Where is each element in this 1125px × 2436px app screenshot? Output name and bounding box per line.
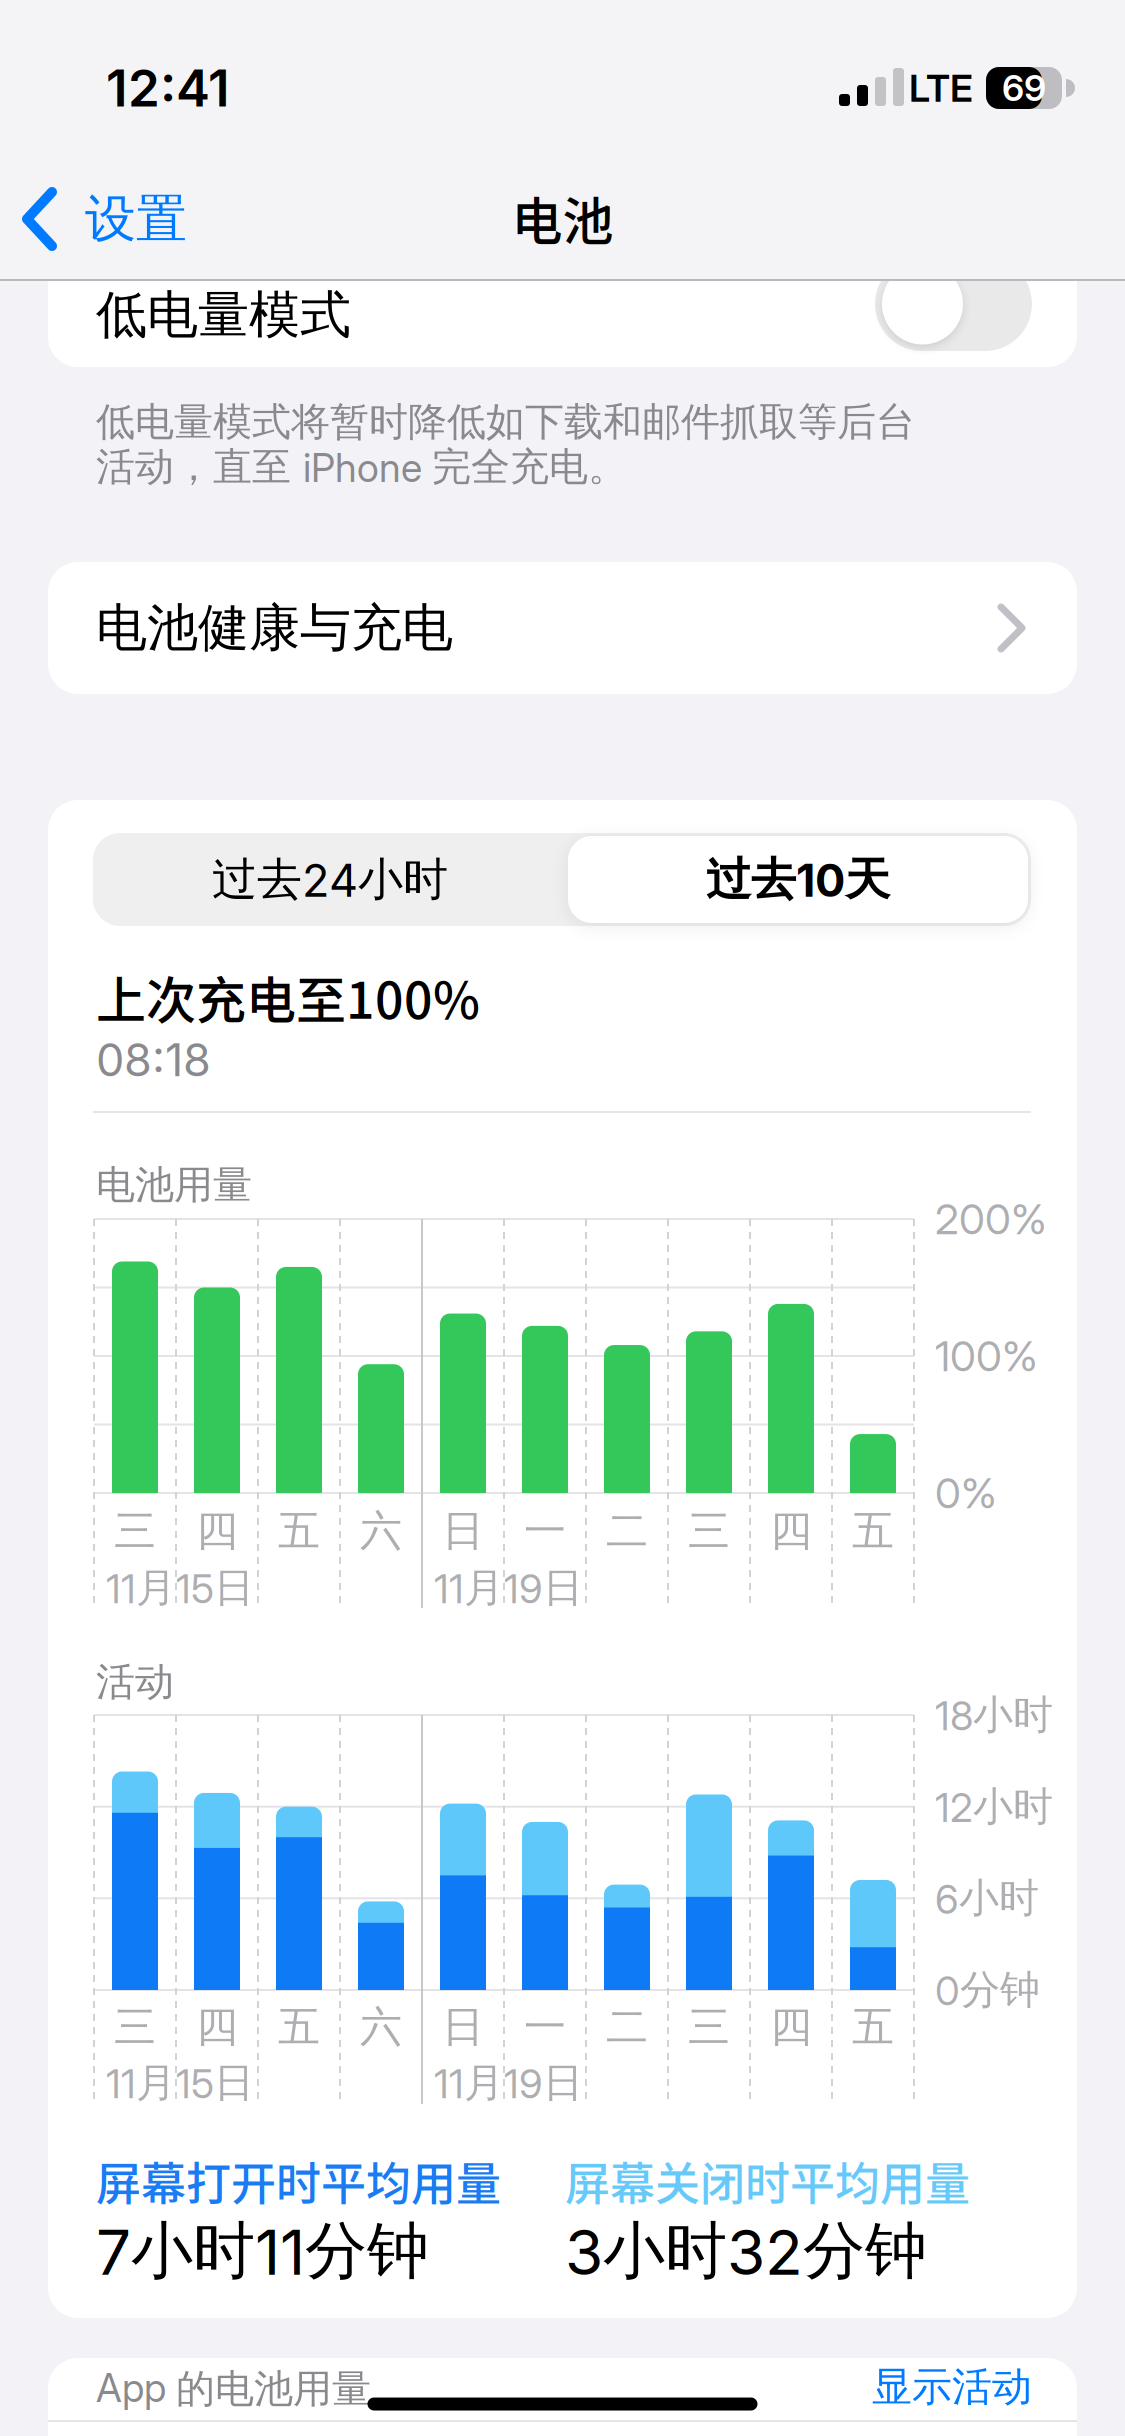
staticText: 四 xyxy=(196,2001,238,2053)
staticText: 显示活动 xyxy=(872,2362,1032,2411)
staticText: 低电量模式 xyxy=(96,284,351,346)
staticText: 低电量模式将暂时降低如下载和邮件抓取等后台 xyxy=(96,398,915,446)
staticText: 11月15日 xyxy=(106,1563,254,1612)
staticText: 08:18 xyxy=(96,1033,211,1087)
staticText: 三 xyxy=(114,1505,156,1557)
staticText: 11月19日 xyxy=(434,1563,583,1612)
staticText: 二 xyxy=(606,2001,648,2053)
staticText: 三 xyxy=(688,2001,730,2053)
staticText: 12:41 xyxy=(106,58,230,118)
staticText: 3小时32分钟 xyxy=(565,2213,927,2289)
staticText: 日 xyxy=(442,2001,484,2053)
staticText: 二 xyxy=(606,1505,648,1557)
staticText: 上次充电至100% xyxy=(96,962,480,1032)
button[interactable]: 返回设置 xyxy=(0,164,300,274)
staticText: 11月15日 xyxy=(106,2058,254,2107)
staticText: 日 xyxy=(442,1505,484,1557)
staticText: 0% xyxy=(935,1468,997,1518)
button[interactable]: 过去24小时 xyxy=(100,833,560,926)
staticText: 过去10天 xyxy=(706,852,890,907)
staticText: 电池 xyxy=(511,182,613,254)
button[interactable]: 过去10天 xyxy=(567,833,1029,926)
staticText: 电池健康与充电 xyxy=(96,597,453,659)
staticText: 五 xyxy=(278,2001,320,2053)
staticText: 0分钟 xyxy=(935,1965,1040,2014)
staticText: 设置 xyxy=(85,188,187,250)
staticText: 11月19日 xyxy=(434,2058,583,2107)
staticText: 屏幕关闭时平均用量 xyxy=(565,2149,970,2213)
staticText: 三 xyxy=(688,1505,730,1557)
button[interactable]: 电池健康与充电 xyxy=(48,562,1077,694)
staticText: 四 xyxy=(770,1505,812,1557)
staticText: 200% xyxy=(935,1194,1047,1244)
staticText: App 的电池用量 xyxy=(96,2365,371,2413)
staticText: 12小时 xyxy=(935,1782,1053,1831)
staticText: 一 xyxy=(524,1505,566,1557)
staticText: 活动，直至 iPhone 完全充电。 xyxy=(96,443,627,491)
staticText: 69 xyxy=(1002,67,1046,109)
staticText: 一 xyxy=(524,2001,566,2053)
staticText: 7小时11分钟 xyxy=(96,2213,429,2289)
staticText: 活动 xyxy=(96,1658,174,1706)
staticText: 五 xyxy=(852,1505,894,1557)
staticText: 四 xyxy=(770,2001,812,2053)
staticText: LTE xyxy=(909,66,973,110)
staticText: 18小时 xyxy=(935,1690,1053,1739)
staticText: 五 xyxy=(852,2001,894,2053)
staticText: 100% xyxy=(935,1331,1038,1381)
button[interactable]: 显示活动 xyxy=(872,2362,1032,2411)
staticText: 6小时 xyxy=(935,1874,1039,1923)
staticText: 六 xyxy=(360,2001,402,2053)
staticText: 电池用量 xyxy=(96,1161,252,1209)
staticText: 过去24小时 xyxy=(212,852,448,907)
staticText: 五 xyxy=(278,1505,320,1557)
staticText: 四 xyxy=(196,1505,238,1557)
button[interactable]: 低电量模式 xyxy=(875,257,1032,351)
staticText: 三 xyxy=(114,2001,156,2053)
staticText: 六 xyxy=(360,1505,402,1557)
staticText: 屏幕打开时平均用量 xyxy=(96,2149,501,2213)
